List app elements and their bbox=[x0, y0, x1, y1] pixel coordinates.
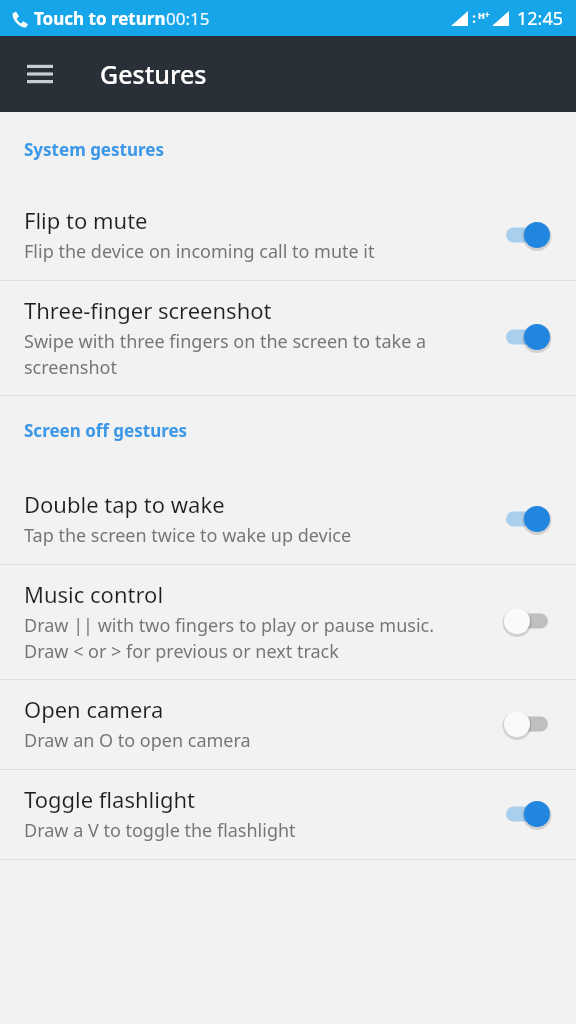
button[interactable]: Open camera off bbox=[500, 704, 554, 744]
staticText: Draw || with two fingers to play or paus… bbox=[24, 613, 474, 663]
staticText: Double tap to wake bbox=[24, 489, 225, 519]
staticText: Toggle flashlight bbox=[24, 784, 196, 814]
staticText: 00:15 bbox=[166, 7, 210, 30]
button[interactable]: Double tap to wake bbox=[0, 475, 576, 564]
staticText: Tap the screen twice to wake up device bbox=[24, 523, 352, 548]
staticText: Swipe with three fingers on the screen t… bbox=[24, 329, 474, 379]
staticText: H bbox=[478, 9, 485, 21]
staticText: Open camera bbox=[24, 694, 164, 724]
staticText: Flip to mute bbox=[24, 205, 148, 235]
button[interactable]: Music control off bbox=[500, 601, 554, 641]
button[interactable]: Music control bbox=[0, 565, 576, 679]
staticText: Draw an O to open camera bbox=[24, 728, 251, 753]
button[interactable]: Flip to mute on bbox=[500, 215, 554, 255]
staticText: Flip the device on incoming call to mute… bbox=[24, 239, 375, 264]
button[interactable]: Double tap to wake on bbox=[500, 499, 554, 539]
button[interactable]: Toggle flashlight bbox=[0, 770, 576, 859]
button[interactable]: Flip to mute bbox=[0, 191, 576, 280]
button[interactable]: Toggle flashlight on bbox=[500, 794, 554, 834]
staticText: Three-finger screenshot bbox=[24, 295, 272, 325]
button[interactable]: Open navigation menu bbox=[14, 48, 66, 100]
staticText: Screen off gestures bbox=[24, 419, 188, 442]
staticText: Music control bbox=[24, 579, 164, 609]
button[interactable]: Open camera bbox=[0, 680, 576, 769]
staticText: System gestures bbox=[24, 138, 164, 161]
button[interactable]: Three-finger screenshot bbox=[0, 281, 576, 395]
staticText: 12:45 bbox=[517, 6, 564, 31]
staticText: + bbox=[485, 9, 490, 20]
staticText: Draw a V to toggle the flashlight bbox=[24, 818, 296, 843]
staticText: Touch to return bbox=[34, 7, 166, 30]
staticText: Gestures bbox=[100, 57, 207, 91]
button[interactable]: Three-finger screenshot on bbox=[500, 317, 554, 357]
